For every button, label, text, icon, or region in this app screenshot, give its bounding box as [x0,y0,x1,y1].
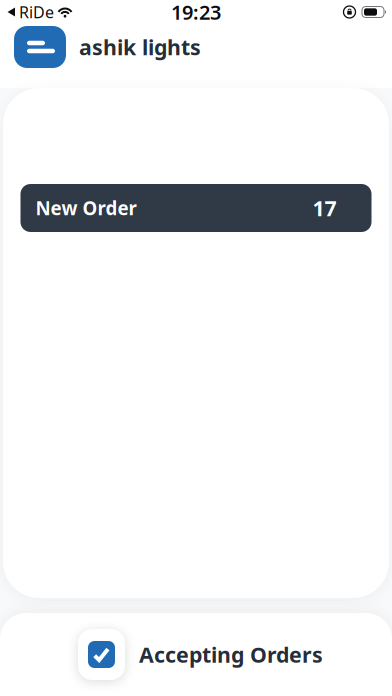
button[interactable]: New Order [20,184,371,232]
staticText: ashik lights [79,33,201,61]
staticText: 19:23 [171,0,221,25]
staticText: RiDe [19,1,54,23]
staticText: New Order [35,196,136,220]
button[interactable]: Accepting Orders [0,613,323,680]
button[interactable]: Menu [14,26,66,68]
staticText: 17 [312,194,336,222]
staticText: Accepting Orders [139,640,323,669]
